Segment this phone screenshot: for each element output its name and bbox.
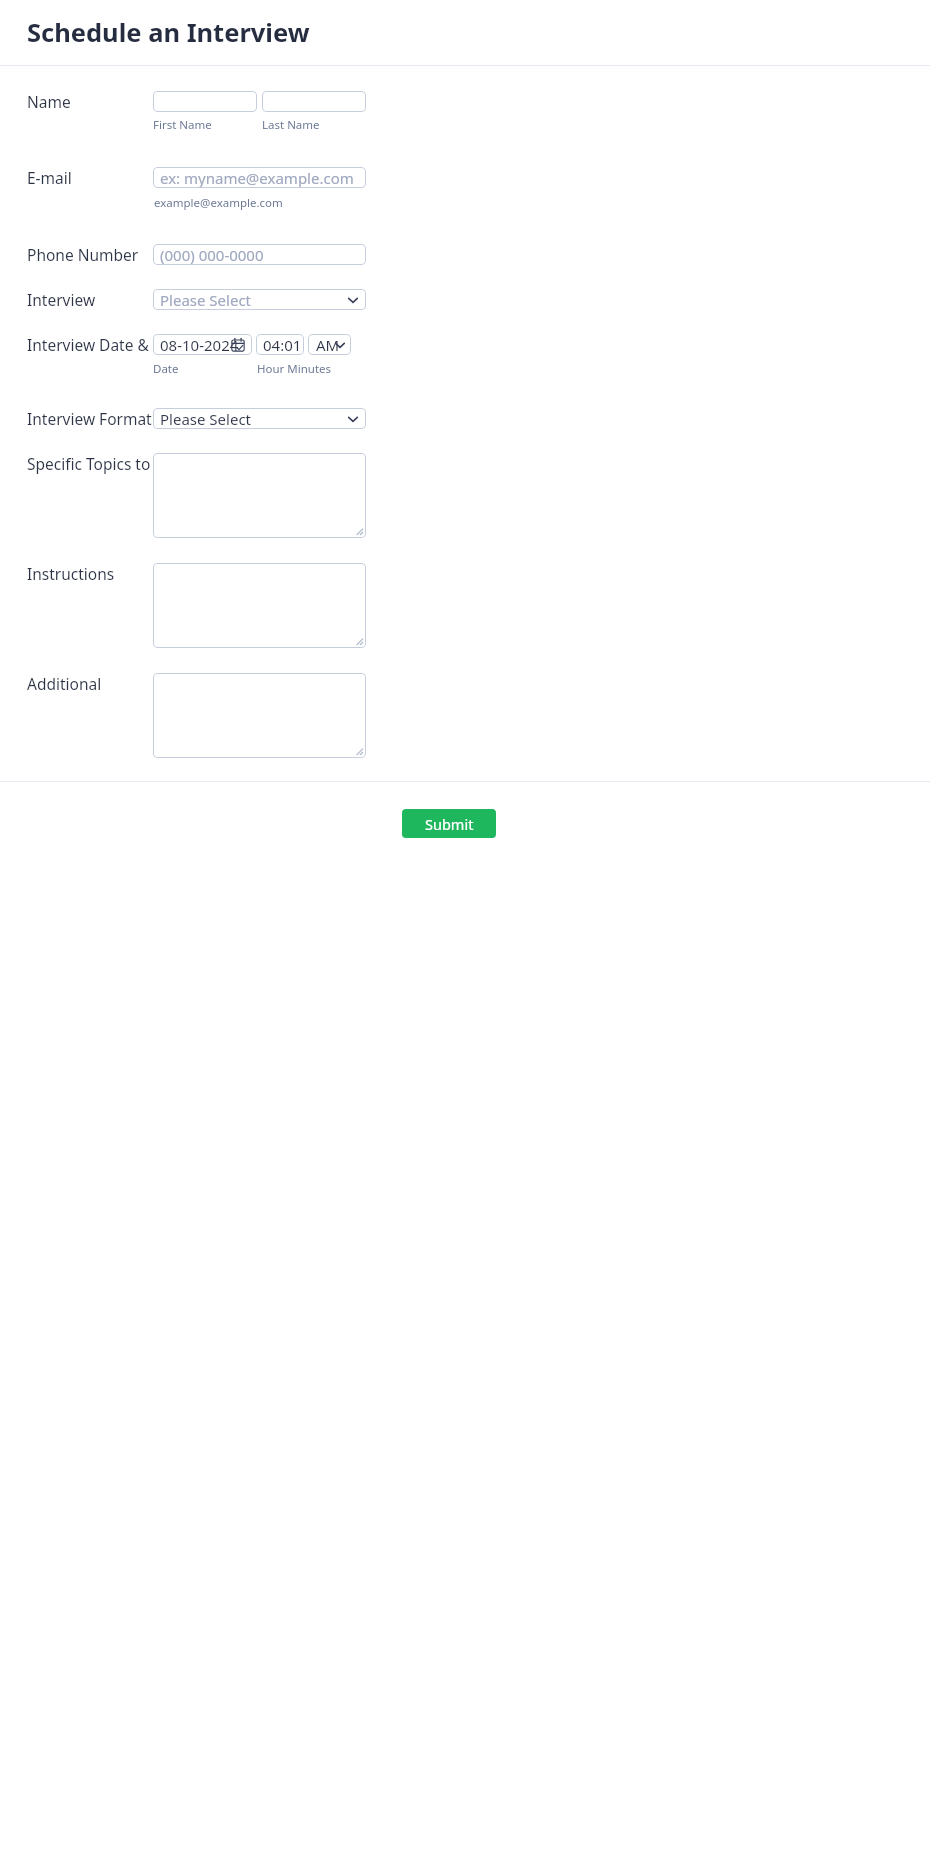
button[interactable]: Please Select (153, 289, 366, 310)
staticText: Interview Format (27, 408, 152, 429)
button[interactable]: Text area (153, 453, 366, 538)
staticText: AM (316, 335, 340, 355)
staticText: Interview Date & Time (27, 334, 153, 355)
button[interactable]: ex: myname@example.com (153, 167, 366, 188)
staticText: Submit (425, 814, 474, 834)
staticText: First Name (153, 117, 262, 133)
staticText: ex: myname@example.com (160, 168, 354, 188)
staticText: Last Name (262, 117, 320, 133)
button[interactable]: 08-10-2024 (153, 334, 252, 355)
staticText: (000) 000-0000 (160, 245, 264, 265)
button[interactable] (153, 91, 257, 112)
staticText: Additional Comments (27, 673, 153, 694)
staticText: Interview Location (27, 289, 153, 310)
button[interactable] (262, 91, 366, 112)
staticText: 04:01 (263, 335, 302, 355)
button[interactable]: AM (308, 334, 351, 355)
button[interactable]: 04:01 (256, 334, 304, 355)
staticText: Instructions (27, 563, 115, 584)
button[interactable]: Please Select (153, 408, 366, 429)
staticText: example@example.com (154, 195, 283, 211)
staticText: E-mail (27, 167, 72, 188)
staticText: Name (27, 91, 71, 112)
staticText: Please Select (160, 409, 252, 429)
staticText: 08-10-2024 (160, 335, 239, 355)
button[interactable]: (000) 000-0000 (153, 244, 366, 265)
button[interactable]: Text area (153, 563, 366, 648)
staticText: Phone Number (27, 244, 139, 265)
staticText: Hour Minutes (257, 361, 332, 377)
staticText: Schedule an Interview (27, 15, 310, 50)
button[interactable]: Submit (402, 809, 496, 838)
staticText: Please Select (160, 290, 252, 310)
staticText: Specific Topics to Cover (27, 453, 153, 474)
button[interactable]: Text area (153, 673, 366, 758)
staticText: Date (153, 361, 257, 377)
